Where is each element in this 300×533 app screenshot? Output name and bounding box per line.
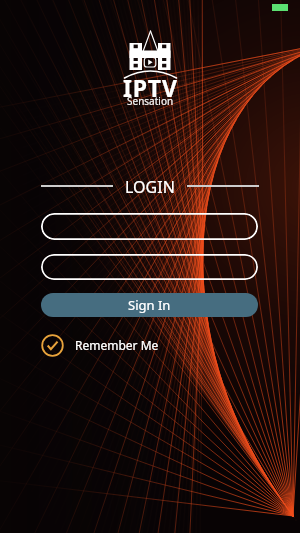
button[interactable]: [41, 254, 258, 280]
staticText: Remember Me: [75, 337, 159, 353]
staticText: Sensation: [127, 94, 174, 108]
staticText: Sign In: [128, 296, 171, 314]
button[interactable]: Sign In: [41, 293, 258, 317]
button[interactable]: [41, 213, 258, 240]
staticText: LOGIN: [125, 176, 175, 196]
button[interactable]: Remember Me: [41, 333, 159, 357]
staticText: IPTV: [123, 72, 178, 103]
